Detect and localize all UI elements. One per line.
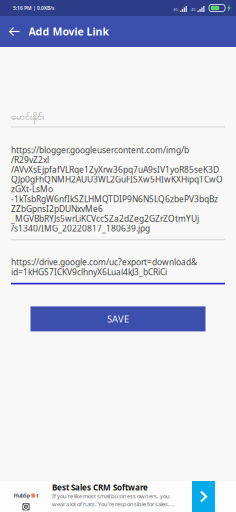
staticText: https://blogger.googleusercontent.com/im… (11, 144, 189, 156)
staticText: QJp0gFhQNMH2AUU3WL2GuFISXw5HIwKXHipqTCwO (11, 174, 223, 185)
staticText: zGXt-LsMo (11, 183, 53, 195)
staticText: id=1kHGS7ICKV9clhnyX6Lual4kJ3_bCRiCi (11, 266, 167, 278)
staticText: 4G (191, 7, 196, 12)
staticText: If you're like most small business owner… (52, 492, 170, 500)
button[interactable]: SAVE (30, 306, 205, 331)
button[interactable]: https://blogger.googleusercontent.com/im… (0, 145, 236, 240)
staticText: -1kTsbRgW6nfIkSZLHMQTDIP9N6NSLQ6zbePV3bq… (11, 193, 218, 205)
staticText: https://drive.google.com/uc?export=downl… (11, 256, 197, 268)
button[interactable]: မောင်းနိုင်း (0, 112, 236, 127)
staticText: _MGVBbRYJs5wrLiKCVccSZa2dZeg2GZrZOtmYUj (11, 213, 199, 224)
staticText: ZZbGpnsI2pDUNxvMe6 (11, 203, 103, 214)
staticText: wear a lot of hats. You're responsible f… (52, 500, 175, 508)
staticText: 5:16 PM | 0.0KB/s (13, 5, 54, 11)
staticText: မောင်းနိုင်း (11, 111, 44, 124)
staticText: /s1340/IMG_20220817_180639.jpg (11, 223, 150, 234)
button[interactable]: Add Movie Link (28, 16, 109, 47)
button[interactable]: Back (0, 16, 28, 47)
staticText: /AVvXsEjpfafVLRqe1ZyXrw36pq7uA9sIV1yoR85… (11, 164, 219, 175)
staticText: /R29vZ2xl (11, 154, 49, 165)
staticText: HubSp (14, 492, 30, 499)
staticText: Best Sales CRM Software (52, 482, 148, 493)
staticText: Add Movie Link (28, 24, 109, 39)
button[interactable]: HubSp (0, 481, 236, 512)
button[interactable]: https://drive.google.com/uc?export=downl… (0, 257, 236, 284)
staticText: t (36, 492, 38, 499)
staticText: 4G (173, 7, 178, 12)
staticText: SAVE (107, 312, 129, 325)
